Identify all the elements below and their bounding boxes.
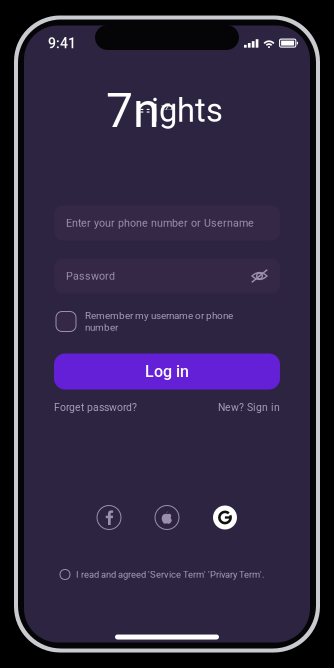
button[interactable]: Log in (54, 353, 280, 389)
button[interactable]: Sign in with Apple (154, 504, 180, 530)
button[interactable]: Sign in with Google (212, 504, 238, 530)
staticText: New? Sign in (218, 401, 280, 414)
button[interactable]: Sign in with Facebook (96, 504, 122, 530)
button[interactable]: Password (54, 258, 280, 293)
staticText: 9:41 (48, 35, 76, 52)
button[interactable]: Remember my username or phone number (56, 311, 282, 331)
staticText: Remember my username or phone number (85, 310, 233, 333)
staticText: Password (66, 270, 115, 282)
button[interactable]: New? Sign in (218, 401, 280, 414)
staticText: Log in (145, 362, 189, 381)
staticText: zZz (161, 102, 174, 113)
staticText: Enter your phone number or Username (66, 217, 254, 229)
staticText: 7n (106, 82, 160, 139)
staticText: Forget password? (54, 401, 137, 414)
button[interactable]: Enter your phone number or Username (54, 205, 280, 240)
staticText: I read and agreed 'Service Term' 'Privar… (76, 569, 264, 580)
staticText: ights (151, 91, 223, 130)
button[interactable]: Forget password? (54, 401, 137, 414)
button[interactable]: I read and agreed 'Service Term' 'Privar… (60, 568, 264, 580)
